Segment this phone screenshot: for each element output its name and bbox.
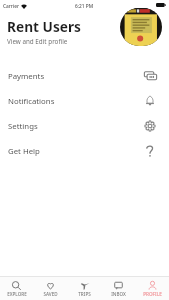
staticText: Carrier [3,3,19,10]
staticText: EXPLORE [7,291,27,297]
staticText: SAVED [43,291,58,297]
staticText: TRIPS [78,291,91,297]
button[interactable]: Settings [0,114,169,139]
button[interactable]: Payments [0,64,169,89]
button[interactable]: EXPLORE [0,277,33,300]
button[interactable]: Profile photo [120,8,162,46]
staticText: PROFILE [143,291,162,297]
staticText: Rent Users [7,17,81,36]
button[interactable]: PROFILE [135,277,169,300]
button[interactable]: SAVED [33,277,67,300]
staticText: 6:21 PM [75,3,94,10]
button[interactable]: INBOX [101,277,135,300]
staticText: INBOX [111,291,126,297]
staticText: Notifications [8,96,140,107]
button[interactable]: TRIPS [67,277,101,300]
button[interactable]: Notifications [0,89,169,114]
staticText: Settings [8,121,140,132]
button[interactable]: Get Help [0,139,169,164]
staticText: View and Edit profile [7,37,68,46]
staticText: Payments [8,71,140,82]
staticText: Get Help [8,146,140,157]
